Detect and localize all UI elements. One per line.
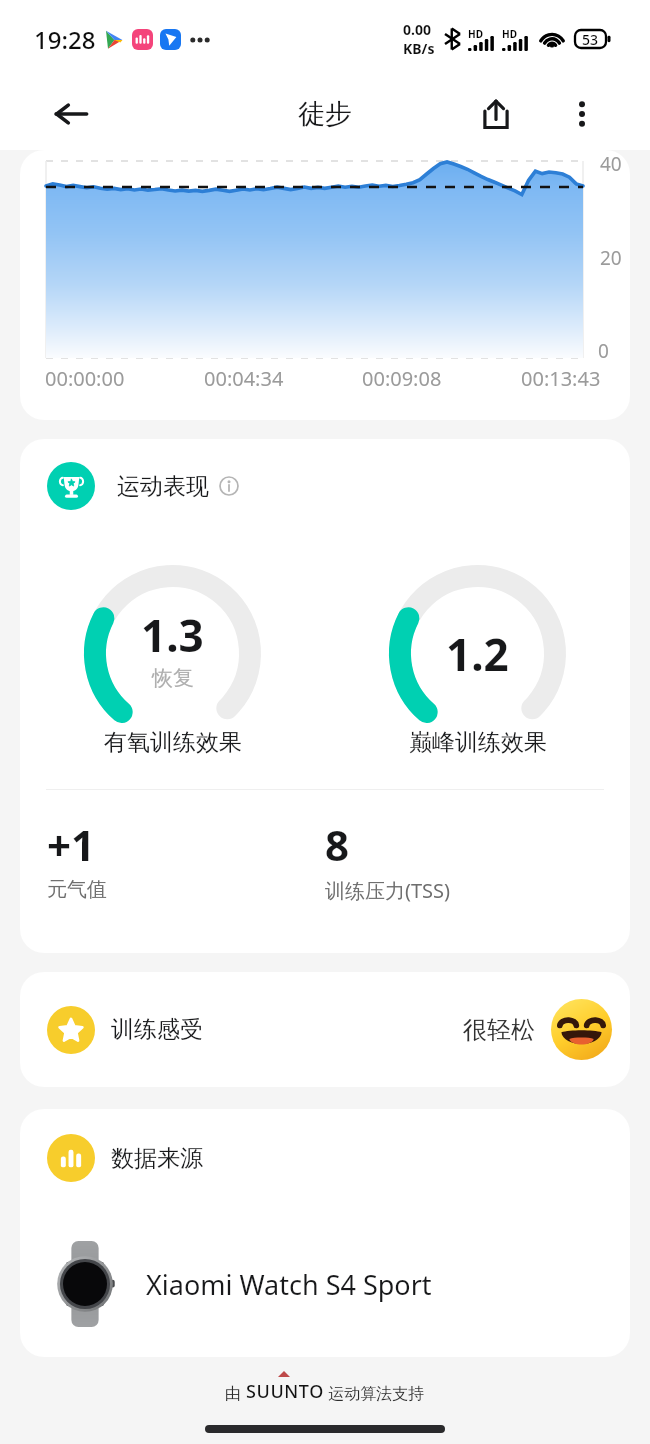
staticText: 数据来源: [111, 1144, 203, 1173]
staticText: 训练感受: [111, 1015, 203, 1044]
staticText: 40: [600, 151, 622, 177]
staticText: Xiaomi Watch S4 Sport: [146, 1266, 432, 1303]
staticText: 8: [325, 816, 350, 873]
staticText: 有氧训练效果: [104, 728, 242, 757]
staticText: 20: [600, 245, 622, 271]
staticText: 1.3: [141, 605, 204, 665]
button[interactable]: Xiaomi Watch S4 Sport: [56, 1241, 630, 1327]
staticText: 由: [225, 1382, 246, 1404]
staticText: 运动表现: [117, 472, 209, 501]
staticText: 19:28: [34, 23, 96, 56]
button[interactable]: Info: [217, 474, 241, 498]
staticText: 53: [582, 30, 599, 49]
staticText: 0: [598, 338, 609, 364]
staticText: KB/s: [403, 39, 435, 58]
staticText: 00:00:00: [45, 365, 125, 392]
staticText: 运动算法支持: [324, 1382, 425, 1404]
staticText: HD: [468, 27, 483, 41]
staticText: +1: [47, 816, 96, 873]
staticText: 00:13:43: [521, 365, 601, 392]
staticText: 0.00: [403, 20, 431, 39]
button[interactable]: Back: [46, 89, 96, 139]
staticText: 1.2: [446, 624, 509, 684]
staticText: 徒步: [298, 97, 352, 131]
staticText: 元气值: [47, 877, 107, 902]
staticText: 很轻松: [463, 1015, 535, 1045]
staticText: 训练压力(TSS): [325, 877, 451, 904]
staticText: HD: [502, 27, 517, 41]
staticText: 00:04:34: [204, 365, 284, 392]
staticText: SUUNTO: [246, 1379, 324, 1404]
button[interactable]: Share: [471, 89, 521, 139]
staticText: 00:09:08: [362, 365, 442, 392]
staticText: 巅峰训练效果: [409, 728, 547, 757]
staticText: 恢复: [152, 665, 194, 691]
button[interactable]: More options: [557, 89, 607, 139]
button[interactable]: 训练感受: [20, 972, 630, 1087]
